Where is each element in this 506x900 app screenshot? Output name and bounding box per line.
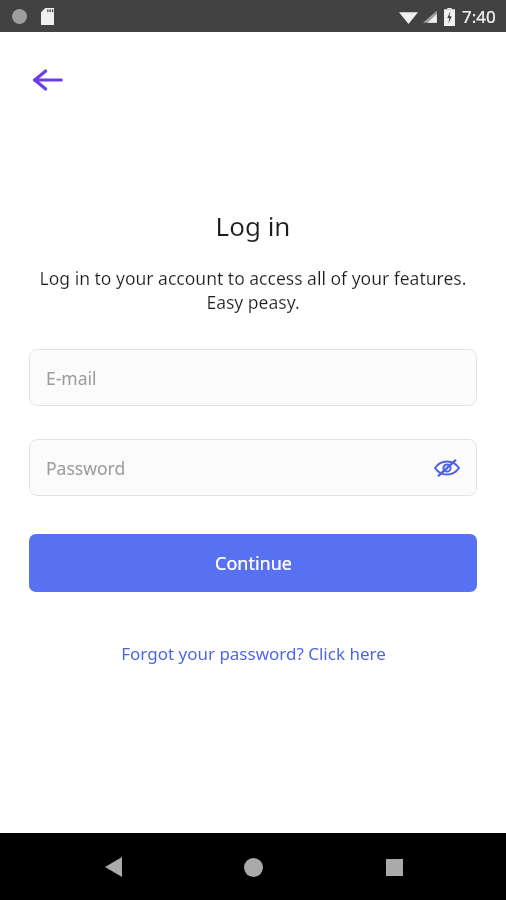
staticText: Continue <box>215 551 292 576</box>
button[interactable]: Show password <box>426 447 468 489</box>
staticText: E-mail <box>46 366 97 390</box>
button[interactable]: E-mail <box>29 349 477 406</box>
button[interactable]: Password <box>29 439 477 496</box>
button[interactable]: Home <box>225 839 281 895</box>
button[interactable]: Back <box>22 54 74 106</box>
staticText: 7:40 <box>462 5 496 28</box>
button[interactable]: Back <box>85 839 141 895</box>
staticText: Password <box>46 456 126 480</box>
staticText: Log in to your account to access all of … <box>34 266 472 314</box>
button[interactable]: Forgot your password? Click here <box>60 642 446 665</box>
staticText: Log in <box>0 208 506 243</box>
button[interactable]: Continue <box>29 534 477 592</box>
staticText: Forgot your password? Click here <box>121 642 386 665</box>
button[interactable]: Recent apps <box>366 839 422 895</box>
